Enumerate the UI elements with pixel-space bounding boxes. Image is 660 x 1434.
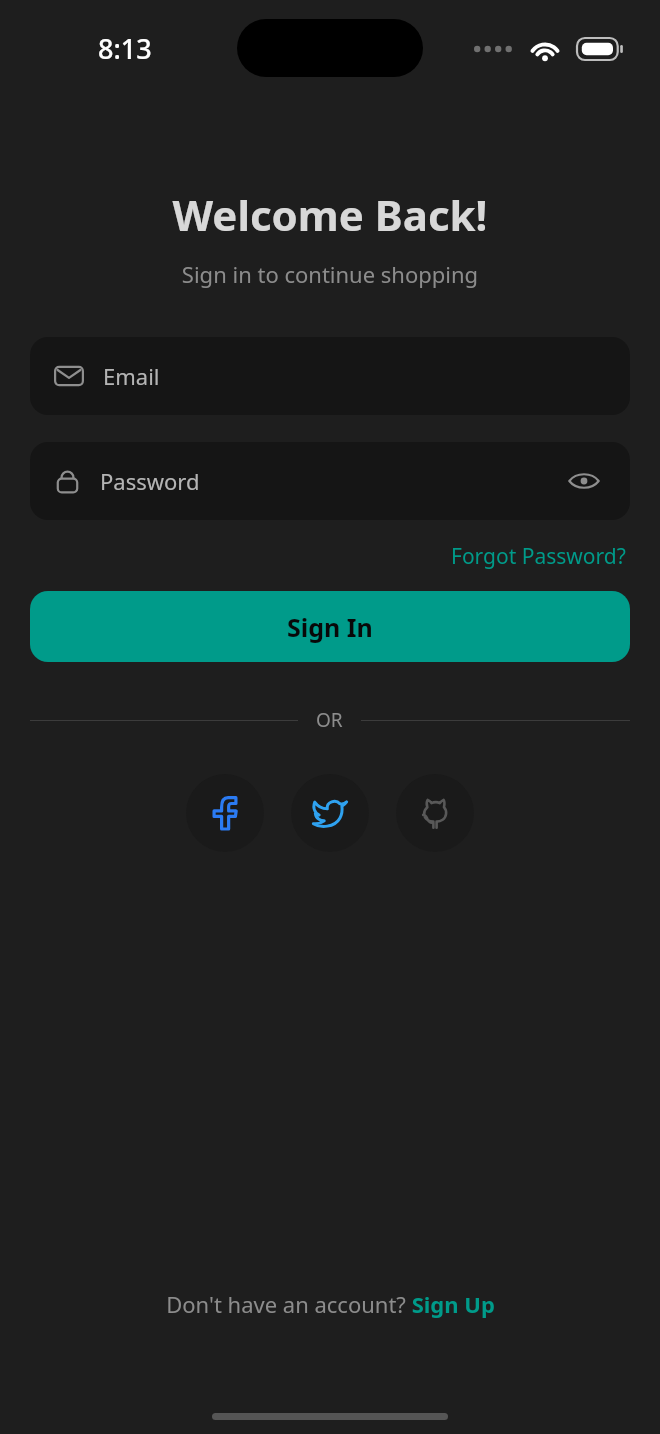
staticText: Email [103,361,160,391]
button[interactable]: Show password [564,461,604,501]
staticText: OR [316,707,343,733]
button[interactable]: Password [30,442,630,520]
button[interactable]: Sign in with GitHub [396,774,474,852]
button[interactable]: Don't have an account? Sign Up [0,1283,660,1325]
staticText: Password [100,466,200,496]
staticText: Don't have an account? Sign Up [166,1289,495,1319]
staticText: 8:13 [98,30,152,67]
button[interactable]: Sign in with Twitter [291,774,369,852]
button[interactable]: Sign in with Facebook [186,774,264,852]
button[interactable]: Sign In [30,591,630,662]
staticText: Sign in to continue shopping [0,259,660,289]
staticText: Forgot Password? [451,542,626,571]
button[interactable]: Forgot Password? [447,538,630,575]
staticText: Welcome Back! [0,186,660,243]
staticText: Sign In [287,610,373,644]
button[interactable]: Email [30,337,630,415]
